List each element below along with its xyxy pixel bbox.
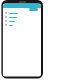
button[interactable] [3, 19, 41, 23]
button[interactable] [3, 11, 41, 15]
button[interactable] [3, 15, 41, 19]
button[interactable]: Top app bar [3, 4, 41, 8]
button[interactable]: Action button [29, 8, 38, 11]
button[interactable] [3, 23, 41, 27]
